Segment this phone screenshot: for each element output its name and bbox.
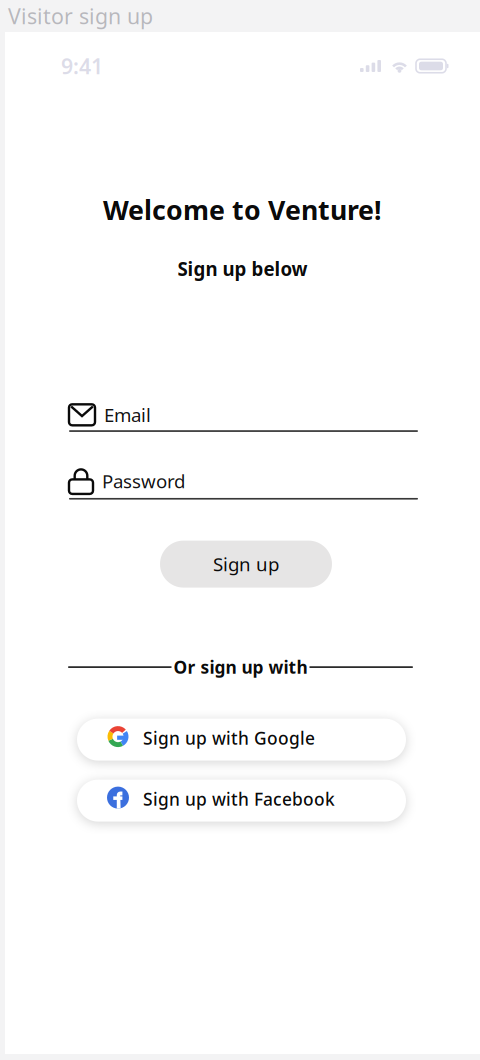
staticText: Sign up with Google [143,727,315,750]
button[interactable]: Sign up [160,541,332,588]
button[interactable]: Sign up with Google [77,719,406,761]
staticText: Welcome to Venture! [103,192,382,227]
staticText: 9:41 [61,52,103,80]
staticText: Or sign up with [173,656,307,679]
staticText: Sign up with Facebook [143,788,335,811]
staticText: Sign up below [177,256,307,281]
staticText: Email [104,402,151,427]
staticText: Visitor sign up [8,2,153,30]
staticText: Sign up [213,552,279,576]
staticText: Password [102,468,185,493]
button[interactable]: Sign up with Facebook [77,780,406,822]
